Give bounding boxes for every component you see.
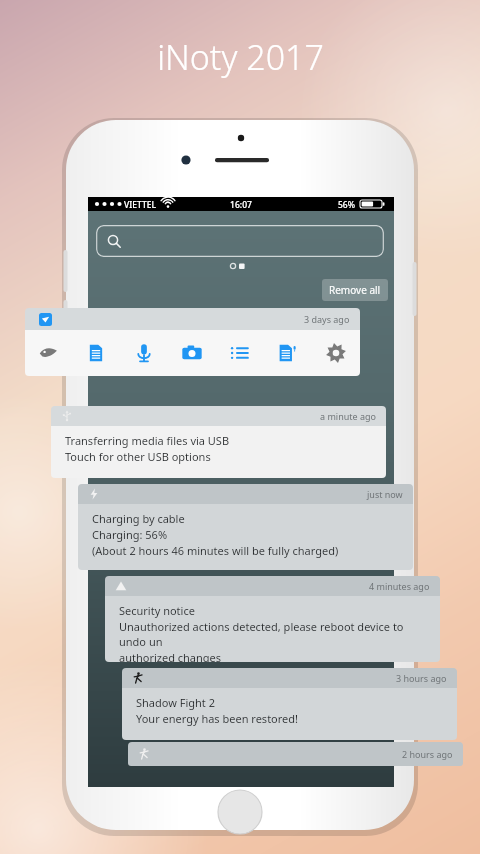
button[interactable]: Remove all — [322, 279, 388, 301]
staticText: Touch for other USB options — [65, 449, 211, 464]
button[interactable]: a minute ago — [51, 406, 386, 478]
button[interactable]: 2 hours ago — [128, 742, 463, 766]
button[interactable]: Text note — [72, 330, 120, 376]
staticText: 4 minutes ago — [369, 580, 430, 592]
staticText: 3 hours ago — [396, 672, 447, 684]
button[interactable]: Checklist — [216, 330, 264, 376]
staticText: 2 hours ago — [402, 748, 453, 760]
button[interactable]: 3 days ago — [25, 308, 360, 330]
staticText: VIETTEL — [124, 199, 156, 211]
button[interactable]: Settings — [312, 330, 360, 376]
staticText: 16:07 — [88, 199, 394, 211]
button[interactable]: just now — [78, 484, 413, 570]
staticText: just now — [367, 488, 403, 500]
button[interactable]: Search — [96, 225, 384, 257]
button[interactable]: 3 hours ago — [122, 668, 457, 740]
staticText: Shadow Fight 2 — [136, 695, 215, 710]
button[interactable]: Camera — [168, 330, 216, 376]
staticText: Your energy has been restored! — [136, 711, 299, 726]
staticText: authorized changes — [119, 650, 222, 662]
button[interactable]: Voice memo — [120, 330, 168, 376]
staticText: a minute ago — [320, 410, 376, 422]
button[interactable]: 4 minutes ago — [105, 576, 440, 662]
staticText: Transferring media files via USB — [65, 433, 230, 448]
staticText: 56% — [338, 199, 355, 211]
staticText: 3 days ago — [304, 313, 350, 325]
staticText: Unauthorized actions detected, please re… — [119, 619, 430, 649]
staticText: Charging: 56% — [92, 527, 168, 542]
staticText: iNoty 2017 — [157, 34, 324, 80]
staticText: Charging by cable — [92, 511, 185, 526]
staticText: Remove all — [329, 283, 381, 297]
staticText: Security notice — [119, 603, 195, 618]
button[interactable]: Voice note — [264, 330, 312, 376]
staticText: (About 2 hours 46 minutes will be fully … — [92, 543, 339, 558]
button[interactable]: Draw note — [25, 330, 72, 376]
